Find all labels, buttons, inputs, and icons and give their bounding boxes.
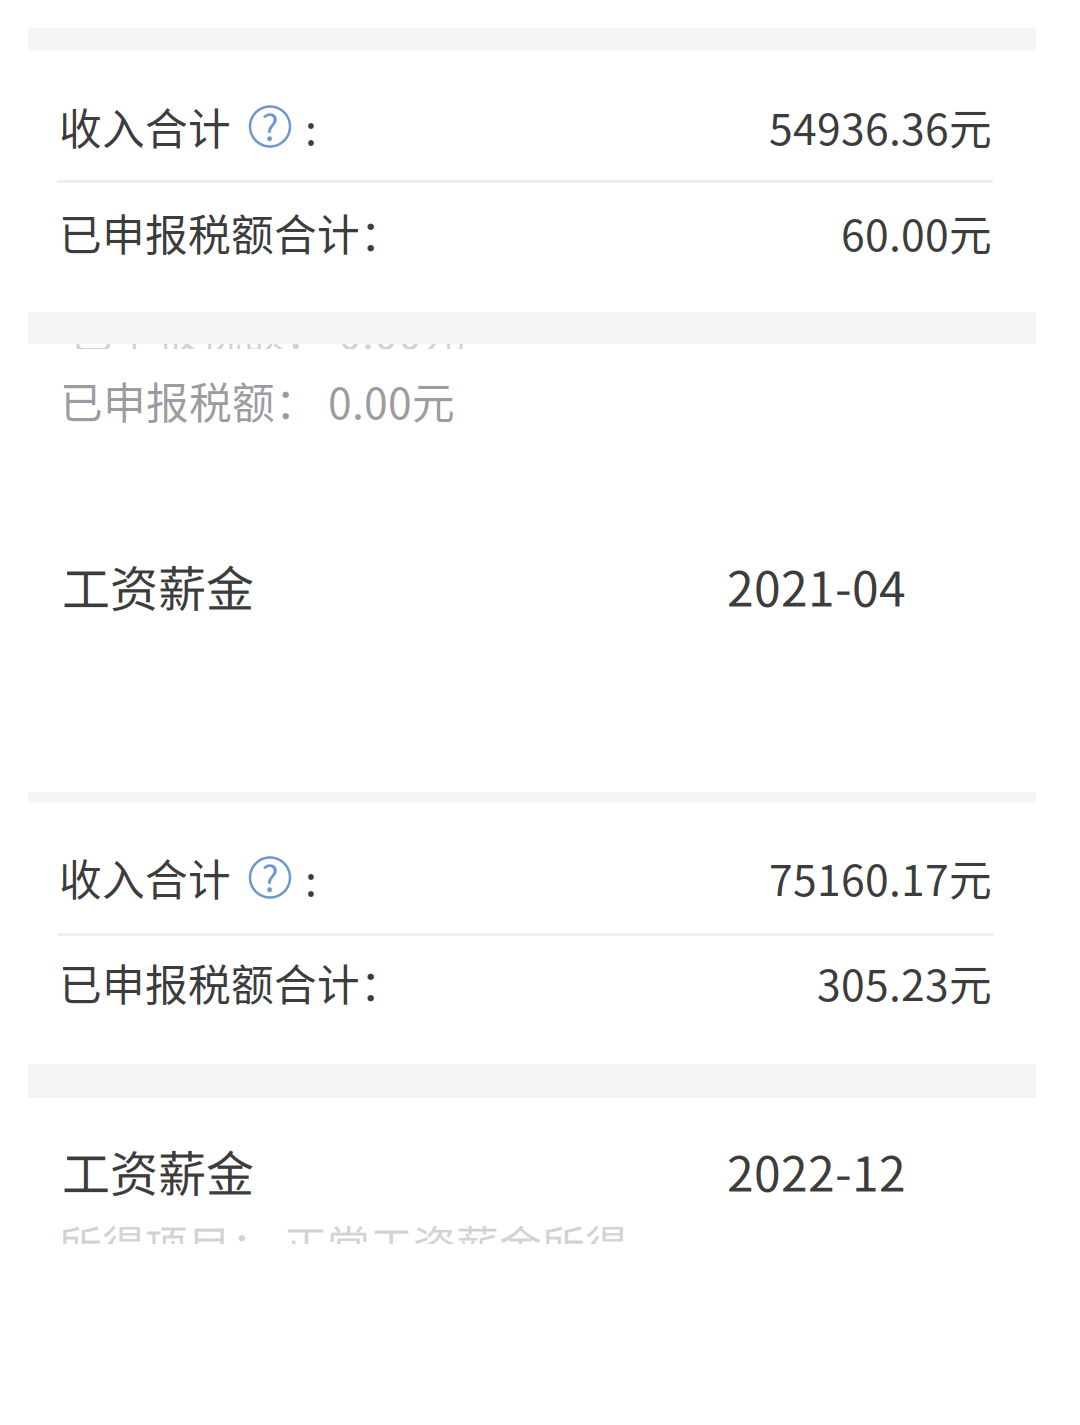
button[interactable]: 已申报税额合计： bbox=[0, 952, 1080, 1013]
button[interactable]: 已申报税额： 0.00元 bbox=[0, 370, 1080, 431]
button[interactable]: 收入合计说明 bbox=[250, 106, 290, 146]
staticText: 已申报税额合计： bbox=[59, 952, 403, 1013]
staticText: 2021-04 bbox=[727, 551, 906, 620]
staticText: ? bbox=[261, 99, 278, 151]
staticText: 工资薪金 bbox=[62, 1136, 254, 1205]
staticText: 已申报税额： 0.00元 bbox=[70, 300, 465, 361]
button[interactable]: 工资薪金 bbox=[0, 1136, 1080, 1205]
staticText: 60.00元 bbox=[841, 202, 992, 263]
staticText: 54936.36元 bbox=[769, 96, 992, 157]
staticText: : bbox=[305, 96, 317, 157]
staticText: 2022-12 bbox=[727, 1136, 906, 1205]
staticText: 工资薪金 bbox=[62, 551, 254, 620]
button[interactable]: 收入合计 bbox=[0, 847, 1080, 908]
staticText: 75160.17元 bbox=[769, 847, 992, 908]
button[interactable]: 收入合计说明 bbox=[250, 857, 290, 897]
button[interactable]: 工资薪金 bbox=[0, 551, 1080, 620]
staticText: 已申报税额： 0.00元 bbox=[60, 370, 455, 431]
staticText: 已申报税额合计： bbox=[59, 202, 403, 263]
staticText: ? bbox=[261, 850, 278, 902]
staticText: 收入合计 bbox=[59, 96, 231, 157]
staticText: 所得项目： 正常工资薪金所得 bbox=[59, 1213, 628, 1275]
staticText: 收入合计 bbox=[59, 847, 231, 908]
staticText: : bbox=[305, 847, 317, 908]
button[interactable]: 已申报税额合计： bbox=[0, 202, 1080, 263]
staticText: 305.23元 bbox=[817, 952, 992, 1013]
button[interactable]: 收入合计 bbox=[0, 96, 1080, 157]
